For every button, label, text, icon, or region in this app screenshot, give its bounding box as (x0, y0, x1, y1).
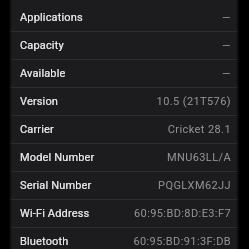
staticText: Applications (20, 11, 83, 24)
staticText: 60:95:BD:8D:E3:F7 (133, 207, 231, 220)
staticText: PQGLXM62JJ (158, 179, 231, 192)
button[interactable]: Serial Number (0, 172, 249, 199)
staticText: Available (20, 67, 66, 80)
staticText: MNU63LL/A (166, 151, 231, 164)
staticText: Capacity (20, 39, 64, 52)
staticText: Wi-Fi Address (20, 207, 90, 220)
button[interactable]: Capacity (0, 32, 249, 59)
button[interactable]: Version (0, 88, 249, 115)
staticText: — (222, 39, 231, 52)
staticText: Version (20, 95, 59, 108)
staticText: — (222, 11, 231, 24)
staticText: 60:95:BD:91:3F:DB (133, 235, 231, 248)
button[interactable]: Carrier (0, 116, 249, 143)
staticText: Model Number (20, 151, 95, 164)
staticText: — (222, 67, 231, 80)
staticText: Carrier (20, 123, 54, 136)
button[interactable]: Available (0, 60, 249, 87)
staticText: Serial Number (20, 179, 92, 192)
staticText: Bluetooth (20, 235, 69, 248)
staticText: 10.5 (21T576) (156, 95, 231, 108)
button[interactable]: Bluetooth (0, 228, 249, 249)
staticText: Cricket 28.1 (167, 123, 231, 136)
button[interactable]: Wi-Fi Address (0, 200, 249, 227)
button[interactable]: Model Number (0, 144, 249, 171)
button[interactable]: Applications (0, 4, 249, 31)
